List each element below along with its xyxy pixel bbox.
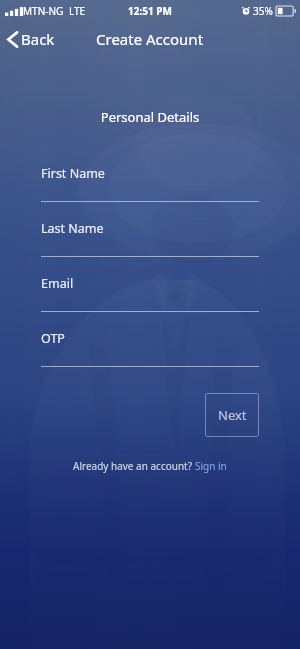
- staticText: OTP: [41, 330, 65, 347]
- staticText: MTN-NG: [23, 4, 64, 18]
- staticText: Next: [218, 406, 247, 424]
- staticText: Back: [21, 29, 55, 49]
- staticText: Personal Details: [0, 108, 300, 126]
- button[interactable]: Sign in: [195, 459, 227, 473]
- button[interactable]: Last Name: [0, 211, 300, 266]
- staticText: Email: [41, 275, 74, 292]
- staticText: LTE: [69, 4, 86, 18]
- staticText: Sign in: [195, 459, 227, 473]
- button[interactable]: OTP: [0, 321, 300, 376]
- staticText: 12:51 PM: [128, 4, 172, 18]
- button[interactable]: Next: [205, 393, 259, 437]
- button[interactable]: Email: [0, 266, 300, 321]
- button[interactable]: First Name: [0, 156, 300, 211]
- staticText: Create Account: [96, 29, 204, 49]
- button[interactable]: Back: [4, 26, 58, 52]
- staticText: Already have an account?: [73, 459, 195, 473]
- staticText: First Name: [41, 165, 105, 182]
- staticText: Last Name: [41, 220, 104, 237]
- staticText: 35%: [253, 4, 273, 18]
